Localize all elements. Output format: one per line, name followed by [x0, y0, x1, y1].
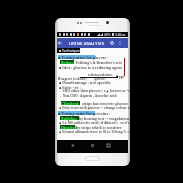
button[interactable]: Back [69, 142, 76, 149]
staticText: reducing substance [88, 73, 113, 76]
staticText: ▪ Normal albumin trace to 30 to 150 mg %… [59, 130, 130, 134]
staticText: Sulpho. [61, 116, 77, 122]
staticText: ▪ Disadvantage : not specific [59, 80, 111, 85]
button[interactable]: Techniques [57, 48, 80, 53]
staticText: ppt [119, 75, 125, 79]
staticText: by heating test → coagulation [79, 116, 129, 121]
staticText: strips has concrete glucose [82, 101, 129, 106]
staticText: Reduce [61, 60, 75, 65]
staticText: URINE ANALYSIS [69, 41, 105, 47]
staticText: ▪ Idea : glucose is a reducing agent [59, 65, 123, 70]
staticText: Techniques [62, 48, 81, 53]
button[interactable]: Recent apps [105, 142, 112, 149]
staticText: Clinitest [61, 101, 79, 107]
button[interactable]: Refresh [109, 40, 115, 46]
staticText: - Non-CHO : Aspirin , Ascorbic acid [60, 94, 117, 98]
button[interactable]: Back [57, 40, 63, 46]
staticText: ▪ False +ve : [59, 85, 81, 90]
staticText: Dipstick [61, 125, 78, 130]
staticText: Reagent (colour) [58, 76, 87, 81]
staticText: Fehling's & Benedict's test [76, 60, 123, 65]
staticText: (glucose) [94, 77, 106, 80]
staticText: by strips which is sensitive [76, 125, 122, 130]
staticText: ▪ 3 x 100 add acetic acid ( if diluted )… [59, 121, 130, 125]
staticText: ▪ Only react with glucose → change colou… [59, 106, 130, 110]
staticText: ▪ Testing urine for glucose : [58, 55, 109, 60]
staticText: - CHO other than glucose ( e.g. lactose … [60, 89, 130, 93]
button[interactable]: Home [89, 142, 96, 149]
staticText: 3:40ᴘᴍ [115, 33, 126, 37]
staticText: ▪ Testing urine for proteins : [58, 111, 111, 116]
staticText: 48% [104, 33, 111, 37]
button[interactable]: More options [117, 40, 123, 46]
button[interactable]: Home button [85, 156, 100, 161]
